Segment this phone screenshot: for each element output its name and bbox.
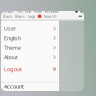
button[interactable]: English [1,33,59,43]
staticText: English [4,35,21,42]
staticText: Account [4,83,24,90]
staticText: Finder [3,8,14,14]
staticText: Window [44,8,58,14]
button[interactable]: Log out [1,64,59,74]
staticText: Back [3,14,12,19]
staticText: Edit [25,8,31,14]
staticText: File [17,8,23,14]
button[interactable]: Theme [1,43,59,52]
staticText: Share [15,14,25,19]
staticText: View [34,8,42,14]
staticText: Theme [4,44,21,51]
staticText: Search [44,14,56,19]
staticText: Log out [4,66,22,73]
button[interactable]: About [1,52,59,62]
staticText: User [4,25,16,32]
staticText: About [4,54,18,61]
button[interactable]: User [1,24,59,33]
staticText: Tags [27,14,35,19]
